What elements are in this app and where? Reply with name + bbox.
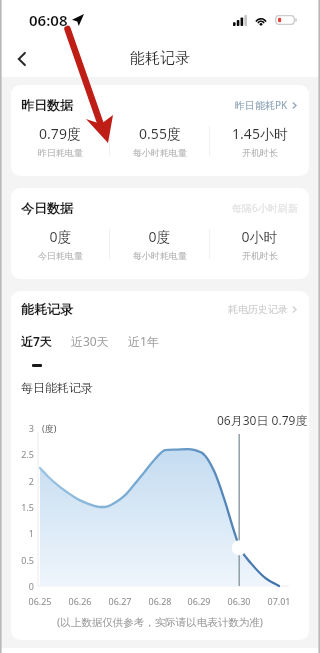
staticText: 每日能耗记录	[21, 380, 93, 395]
staticText: 06.25	[23, 595, 57, 607]
staticText: 1	[12, 527, 34, 539]
staticText: 昨日耗电量	[38, 147, 83, 158]
staticText: 耗电历史记录	[228, 303, 288, 316]
staticText: 06.29	[182, 595, 216, 607]
staticText: 0	[12, 580, 34, 592]
staticText: 06.28	[143, 595, 177, 607]
staticText: 近30天	[71, 333, 109, 349]
staticText: 开机时长	[242, 147, 278, 158]
staticText: 3	[12, 422, 34, 434]
staticText: 0.55度	[139, 124, 181, 143]
staticText: 06.26	[63, 595, 97, 607]
staticText: 0.79度	[39, 124, 81, 143]
staticText: 2.5	[12, 448, 34, 460]
staticText: 06月30日 0.79度	[217, 412, 308, 428]
staticText: (度)	[42, 422, 57, 434]
staticText: 今日耗电量	[38, 250, 83, 261]
staticText: 每小时耗电量	[133, 147, 187, 158]
staticText: 昨日能耗PK	[235, 98, 288, 112]
staticText: 0小时	[241, 227, 278, 246]
staticText: 06:08	[29, 10, 68, 30]
staticText: 昨日数据	[21, 97, 73, 113]
button[interactable]: Back	[6, 43, 38, 75]
staticText: 能耗记录	[21, 301, 73, 317]
button[interactable]: 昨日能耗PK	[235, 98, 298, 112]
staticText: 0度	[148, 227, 171, 246]
button[interactable]: 耗电历史记录	[228, 303, 298, 316]
button[interactable]: 近1年	[123, 333, 164, 367]
staticText: 2	[12, 475, 34, 487]
staticText: 能耗记录	[130, 49, 190, 68]
staticText: 今日数据	[21, 200, 73, 216]
staticText: 1.45小时	[232, 124, 288, 143]
button[interactable]: 近7天	[16, 333, 57, 367]
staticText: 0.5	[12, 554, 34, 566]
staticText: 06.30	[222, 595, 256, 607]
button[interactable]: 近30天	[66, 333, 114, 367]
staticText: 近1年	[128, 333, 159, 349]
staticText: 每隔6小时刷新	[232, 201, 298, 215]
staticText: 07.01	[262, 595, 296, 607]
staticText: 1.5	[12, 501, 34, 513]
staticText: 0度	[49, 227, 72, 246]
staticText: (以上数据仅供参考，实际请以电表计数为准)	[11, 615, 309, 629]
staticText: 每小时耗电量	[133, 250, 187, 261]
staticText: 开机时长	[242, 250, 278, 261]
staticText: 近7天	[21, 333, 52, 349]
staticText: 06.27	[103, 595, 137, 607]
